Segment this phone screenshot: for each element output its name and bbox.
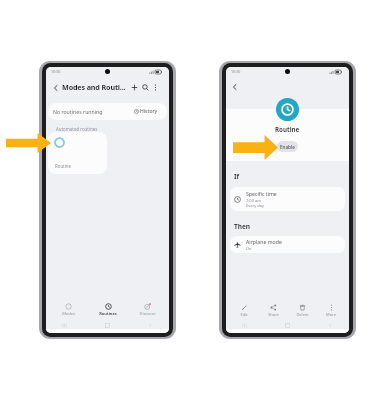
staticText: Routine [55,163,72,169]
staticText: Edit [240,312,248,317]
button[interactable]: Enable [277,141,298,152]
button[interactable]: History [133,107,159,116]
button[interactable]: More options [151,83,160,92]
button[interactable]: Search [140,82,151,93]
button[interactable]: Add routine [129,82,140,93]
staticText: Every day [246,203,264,208]
button[interactable]: Delete [289,304,315,317]
staticText: Modes [62,311,75,316]
staticText: History [140,108,158,115]
staticText: 10:30 [231,69,241,74]
staticText: Modes and Routi... [62,82,126,92]
staticText: Enable [280,144,295,150]
staticText: 7:00 am [246,198,261,203]
button[interactable]: Routine [48,132,107,174]
button[interactable]: Back [50,82,61,93]
button[interactable]: Edit [231,304,257,317]
button[interactable]: Specific time [230,187,345,211]
staticText: Specific time [246,190,277,197]
button[interactable]: No routines running [48,103,167,120]
button[interactable]: Airplane mode [230,236,345,253]
staticText: 10:30 [51,69,61,74]
staticText: Delete [296,312,309,317]
staticText: Routine [275,125,300,133]
staticText: Automated routines [56,126,98,132]
staticText: No routines running [53,108,103,115]
staticText: Routines [99,311,117,316]
staticText: If [234,172,240,181]
button[interactable]: Back [229,81,241,93]
staticText: Then [234,222,251,231]
staticText: Discover [139,311,156,316]
button[interactable]: More [318,304,344,317]
staticText: Share [268,312,279,317]
staticText: On [246,246,252,251]
button[interactable]: Share [260,304,286,317]
staticText: More [326,312,336,317]
button[interactable]: Discover [129,303,165,316]
button[interactable]: Modes [50,303,86,316]
button[interactable]: Routines [90,303,126,316]
staticText: Airplane mode [246,238,282,245]
